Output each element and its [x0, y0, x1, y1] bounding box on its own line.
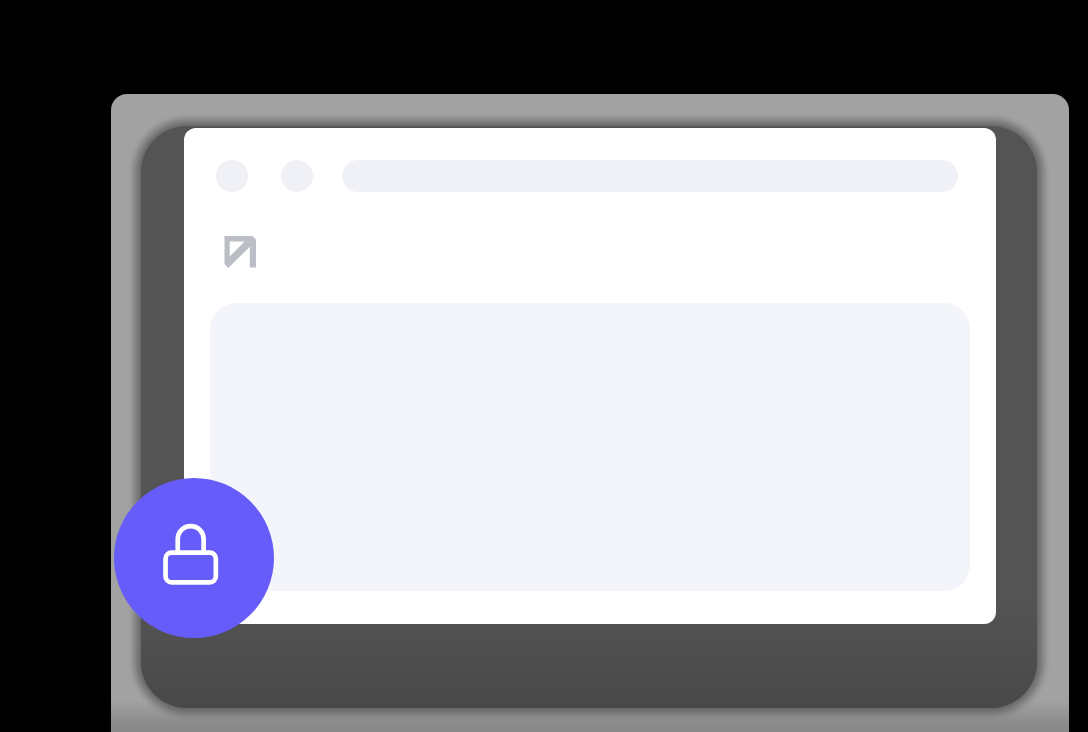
- button[interactable]: Home: [224, 236, 256, 268]
- button[interactable]: Forward: [281, 160, 313, 192]
- button[interactable]: Secure connection: [114, 478, 274, 638]
- button[interactable]: Back: [216, 160, 248, 192]
- button[interactable]: Content: [210, 303, 970, 591]
